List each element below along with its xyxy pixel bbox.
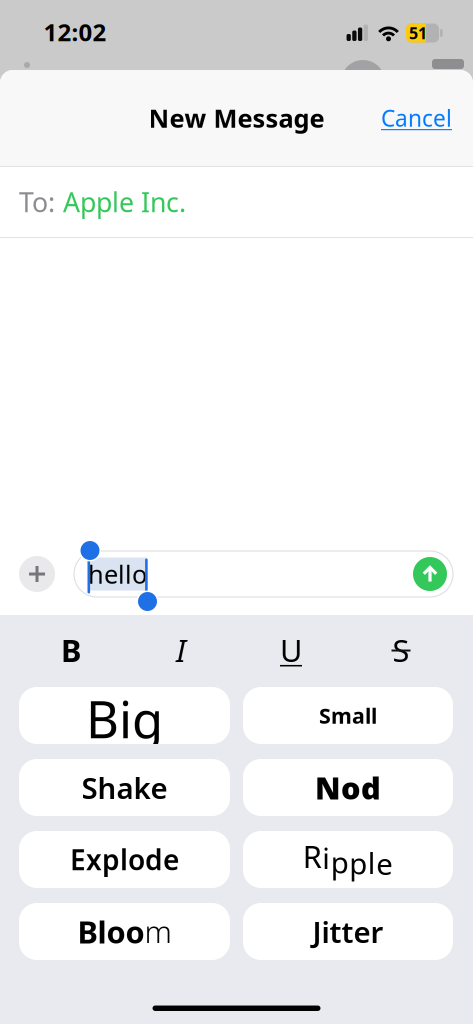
button[interactable]: Small <box>243 687 453 744</box>
staticText: Small <box>319 701 377 730</box>
staticText: 51 <box>409 22 427 44</box>
staticText: Shake <box>81 768 167 807</box>
staticText: To: <box>19 184 55 220</box>
staticText: e <box>376 844 393 883</box>
staticText: B <box>61 630 81 670</box>
staticText: i <box>322 838 330 877</box>
button[interactable]: Bloo <box>19 903 230 960</box>
staticText: p <box>349 843 367 882</box>
staticText: Nod <box>315 767 381 808</box>
button[interactable] <box>19 556 55 592</box>
staticText: Apple Inc. <box>63 184 186 220</box>
staticText: l <box>368 843 376 882</box>
button[interactable]: S <box>346 631 456 669</box>
staticText: Bloo <box>77 911 144 952</box>
staticText: 12:02 <box>43 16 106 48</box>
button[interactable]: Nod <box>243 759 453 816</box>
staticText: I <box>176 630 186 670</box>
button[interactable]: Jitter <box>243 903 453 960</box>
button[interactable] <box>413 557 447 591</box>
button[interactable]: R <box>243 831 453 888</box>
staticText: Explode <box>70 841 179 878</box>
staticText: Jitter <box>312 912 383 951</box>
staticText: R <box>303 836 322 876</box>
staticText: p <box>331 842 349 881</box>
staticText: Big <box>86 685 163 752</box>
button[interactable]: B <box>16 631 126 669</box>
button[interactable]: Big <box>19 687 230 744</box>
staticText: m <box>144 911 171 952</box>
button[interactable]: Shake <box>19 759 230 816</box>
button[interactable]: Cancel <box>381 103 452 133</box>
staticText: S <box>392 630 409 670</box>
staticText: Cancel <box>381 103 452 133</box>
staticText: hello <box>88 557 147 591</box>
staticText: U <box>280 630 302 670</box>
button[interactable]: Explode <box>19 831 230 888</box>
button[interactable]: U <box>236 631 346 669</box>
staticText: New Message <box>148 101 324 135</box>
button[interactable]: I <box>126 631 236 669</box>
